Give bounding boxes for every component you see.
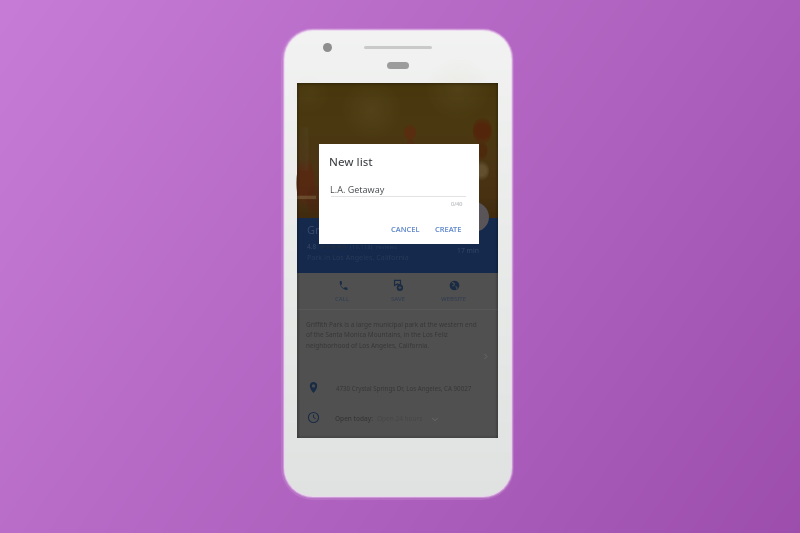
button[interactable]: CREATE <box>432 221 465 237</box>
staticText: Park in Los Angeles, California <box>307 252 409 262</box>
staticText: SAVE <box>391 295 406 303</box>
staticText: WEBSITE <box>441 295 467 303</box>
staticText: CANCEL <box>391 224 420 234</box>
staticText: Open today: <box>335 414 374 423</box>
staticText: 4730 Crystal Springs Dr, Los Angeles, CA… <box>336 384 472 392</box>
button[interactable]: SAVE <box>370 273 426 308</box>
button[interactable]: Griffith Park is a large municipal park … <box>297 309 498 369</box>
staticText: CALL <box>335 295 350 303</box>
staticText: Griffith Park <box>307 222 370 237</box>
staticText: 4.8 <box>307 242 317 251</box>
staticText: 17 min <box>457 246 479 255</box>
button[interactable]: WEBSITE <box>426 273 482 308</box>
staticText: CREATE <box>435 224 462 234</box>
staticText: New list <box>329 154 373 170</box>
staticText: reviews <box>376 243 398 251</box>
staticText: Griffith Park is a large municipal park … <box>306 320 477 350</box>
button[interactable]: Directions <box>459 202 489 232</box>
button[interactable]: CANCEL <box>388 221 423 237</box>
staticText: L.A. Getaway <box>330 183 385 195</box>
button[interactable]: Open today: <box>297 403 498 433</box>
button[interactable]: 4730 Crystal Springs Dr, Los Angeles, CA… <box>297 373 498 403</box>
staticText: (19,118) <box>350 243 373 251</box>
staticText: 0/40 <box>451 200 463 207</box>
button[interactable]: CALL <box>314 273 370 308</box>
